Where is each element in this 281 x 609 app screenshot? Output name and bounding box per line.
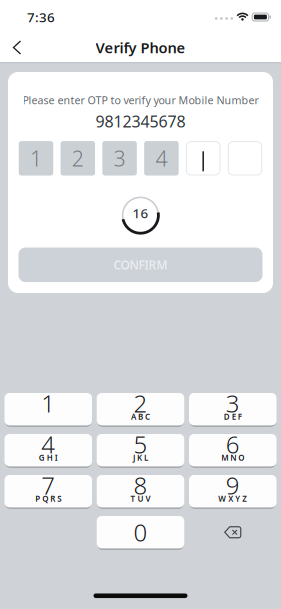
staticText: 0 [133,516,147,548]
staticText: T U V [130,493,150,504]
staticText: P Q R S [35,493,61,504]
staticText: A B C [131,411,150,422]
staticText: 4 [41,428,55,460]
staticText: CONFIRM [113,257,167,273]
staticText: 1 [41,387,55,419]
button[interactable]: 8 [97,475,184,507]
staticText: 2 [72,144,84,172]
staticText: 16 [132,204,148,222]
staticText: 6 [226,428,240,460]
button[interactable]: 6 [189,434,276,466]
staticText: W X Y Z [218,493,247,504]
staticText: 2 [133,387,147,419]
staticText: G H I [39,452,58,463]
staticText: Verify Phone [95,38,185,57]
button[interactable]: 7 [4,475,92,507]
staticText: J K L [133,452,148,463]
button[interactable]: 1 [4,393,92,425]
staticText: 4 [155,144,167,172]
staticText: 5 [133,428,147,460]
button[interactable]: 5 [97,434,184,466]
staticText: Please enter OTP to verify your Mobile N… [22,93,258,107]
staticText: D E F [224,411,242,422]
button[interactable]: 2 [97,393,184,425]
staticText: 9812345678 [95,111,185,132]
button[interactable]: 4 [4,434,92,466]
staticText: M N O [221,452,244,463]
button[interactable]: CONFIRM [18,248,262,282]
button[interactable]: 3 [189,393,276,425]
staticText: 9 [226,469,240,501]
button[interactable]: Back [0,33,35,61]
staticText: 8 [133,469,147,501]
staticText: 1 [30,144,42,172]
button[interactable]: 0 [97,516,184,548]
staticText: 7 [41,469,55,501]
staticText: 3 [226,387,240,419]
staticText: 3 [114,144,126,172]
button[interactable]: Delete [189,516,276,548]
staticText: 7:36 [27,8,55,26]
button[interactable]: 9 [189,475,276,507]
